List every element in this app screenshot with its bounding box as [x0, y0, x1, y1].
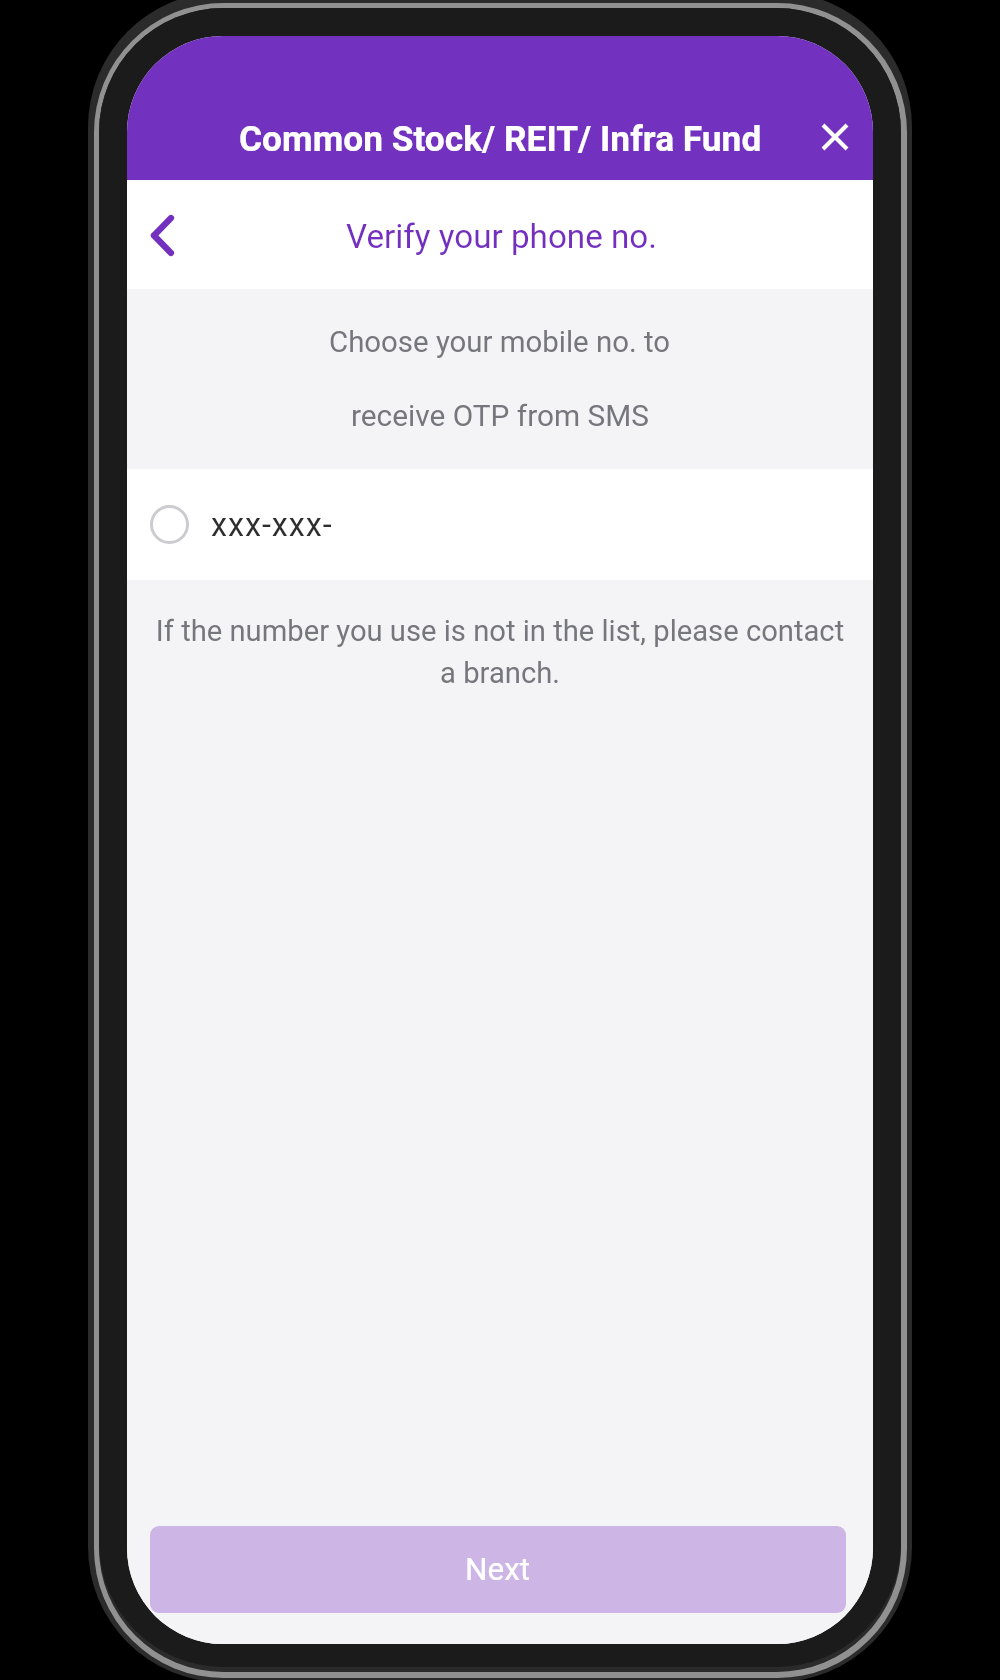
- button[interactable]: xxx-xxx-: [127, 469, 873, 580]
- staticText: Common Stock/ REIT/ Infra Fund: [239, 118, 762, 159]
- button[interactable]: Next: [150, 1526, 846, 1613]
- button[interactable]: Close: [800, 102, 870, 172]
- button[interactable]: Back: [127, 195, 202, 275]
- staticText: receive OTP from SMS: [351, 398, 649, 433]
- staticText: Next: [465, 1551, 531, 1588]
- staticText: If the number you use is not in the list…: [150, 614, 850, 690]
- staticText: Verify your phone no.: [346, 217, 657, 256]
- staticText: xxx-xxx-: [211, 506, 333, 544]
- staticText: Choose your mobile no. to: [329, 325, 671, 359]
